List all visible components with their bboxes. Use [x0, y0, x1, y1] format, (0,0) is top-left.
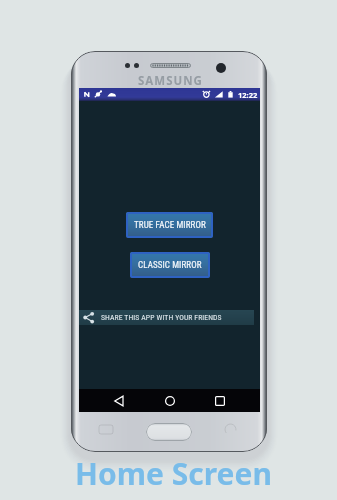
staticText: SHARE THIS APP WITH YOUR FRIENDS — [101, 313, 222, 322]
button[interactable]: SHARE THIS APP WITH YOUR FRIENDS — [79, 310, 254, 325]
button[interactable]: Home button — [146, 423, 192, 441]
staticText: TRUE FACE MIRROR — [134, 220, 206, 231]
staticText: SAMSUNG — [138, 73, 203, 89]
button[interactable]: Home — [159, 390, 181, 412]
staticText: Home Screen — [75, 453, 272, 494]
staticText: 12:22 — [238, 90, 258, 100]
button[interactable]: Recent apps — [209, 390, 231, 412]
button[interactable]: CLASSIC MIRROR — [130, 252, 210, 278]
button[interactable]: Back — [108, 390, 130, 412]
staticText: CLASSIC MIRROR — [138, 260, 202, 271]
button[interactable]: TRUE FACE MIRROR — [126, 212, 213, 238]
